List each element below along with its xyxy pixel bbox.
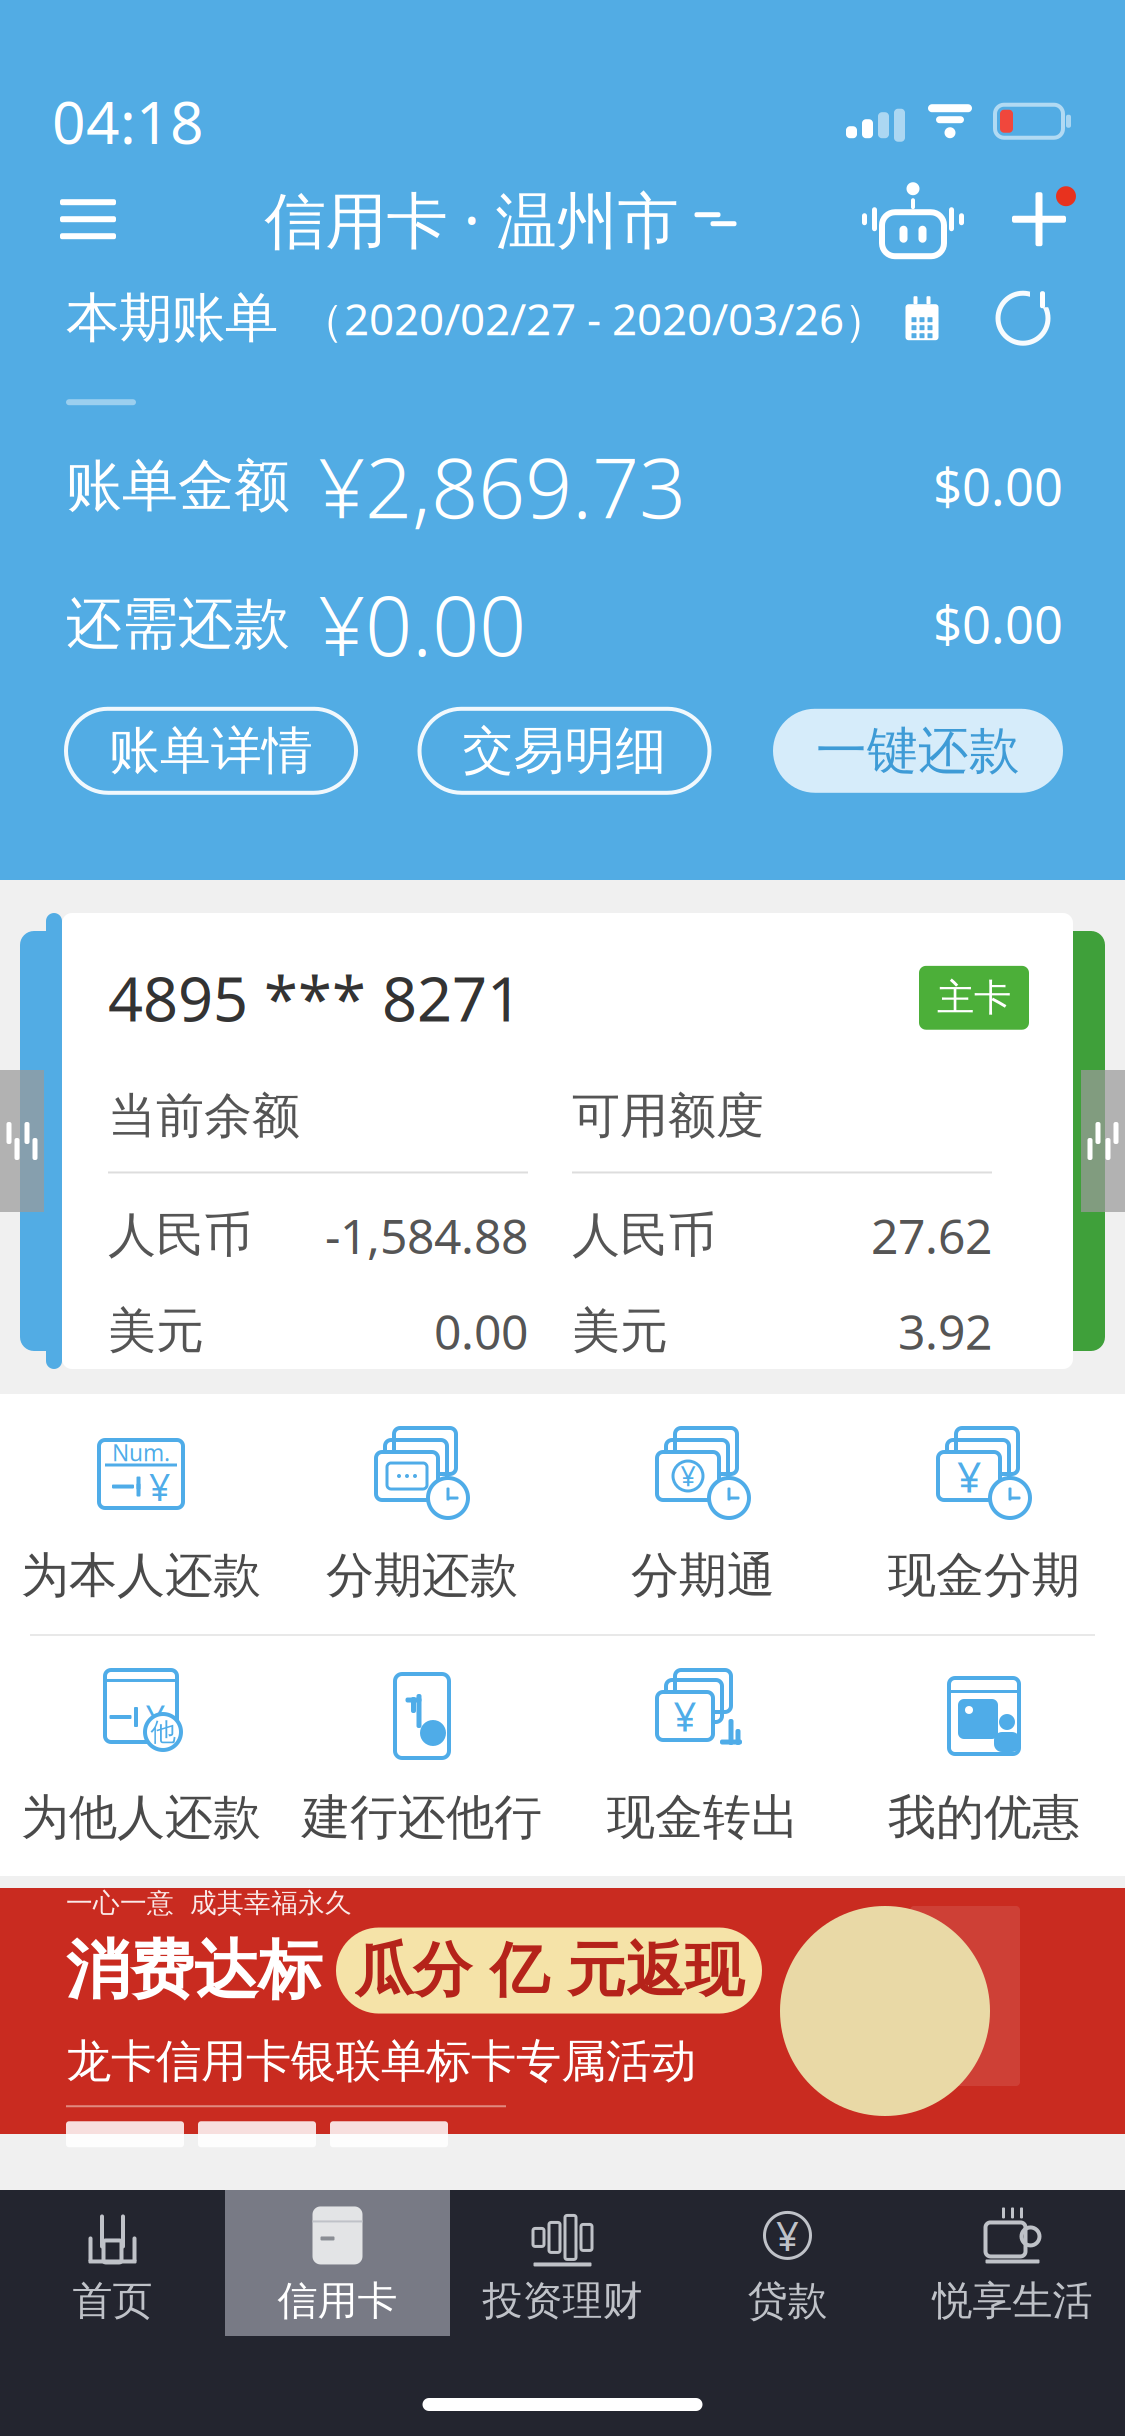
staticText: 当前余额: [108, 1086, 300, 1145]
staticText: 为本人还款: [21, 1546, 261, 1605]
staticText: ¥: [680, 1458, 695, 1494]
staticText: 分期还款: [326, 1546, 518, 1605]
button[interactable]: 消费达标瓜分亿元返现活动: [0, 1888, 1125, 2134]
staticText: ¥: [149, 1462, 170, 1511]
staticText: 消费达标: [66, 1931, 322, 2010]
staticText: 瓜分 亿 元返现: [354, 1934, 744, 2007]
staticText: ¥: [776, 2209, 799, 2262]
button[interactable]: 交易明细: [419, 709, 709, 793]
button[interactable]: 菜单: [34, 171, 142, 267]
staticText: 本期账单: [66, 285, 278, 351]
button[interactable]: 信用卡: [225, 2190, 450, 2336]
staticText: 为他人还款: [21, 1788, 261, 1847]
staticText: ¥: [145, 1694, 165, 1740]
staticText: ¥: [673, 1689, 696, 1742]
staticText: Num.: [112, 1437, 170, 1467]
staticText: $0.00: [933, 590, 1063, 657]
button[interactable]: 智能客服: [861, 171, 965, 267]
staticText: 首页: [72, 2276, 152, 2325]
button[interactable]: 刷新: [983, 281, 1063, 355]
staticText: 主卡: [937, 975, 1011, 1021]
staticText: 账单详情: [109, 720, 313, 782]
staticText: 一键还款: [816, 720, 1020, 782]
button[interactable]: ¥: [675, 2190, 900, 2336]
staticText: 3.92: [898, 1299, 992, 1363]
staticText: 0.00: [434, 1299, 528, 1363]
button[interactable]: 添加: [991, 171, 1087, 267]
button[interactable]: Num.: [0, 1394, 281, 1634]
staticText: 贷款: [747, 2276, 827, 2325]
button[interactable]: 上一张卡: [0, 1070, 44, 1212]
staticText: 一心一意 成其幸福永久: [66, 1887, 352, 1920]
staticText: 可用额度: [572, 1086, 764, 1145]
button[interactable]: ¥: [562, 1636, 843, 1876]
button[interactable]: 投资理财: [450, 2190, 675, 2336]
staticText: 现金转出: [607, 1788, 799, 1847]
staticText: 还需还款: [66, 589, 290, 658]
staticText: 投资理财: [482, 2276, 642, 2325]
button[interactable]: ¥: [843, 1394, 1124, 1634]
staticText: 他: [150, 1716, 175, 1747]
staticText: 27.62: [871, 1203, 992, 1267]
staticText: 美元: [572, 1302, 668, 1361]
button[interactable]: 我的优惠: [843, 1636, 1124, 1876]
button[interactable]: 信用卡 · 温州市: [264, 171, 738, 267]
button[interactable]: ¥: [0, 1636, 281, 1876]
button[interactable]: 建行还他行: [281, 1636, 562, 1876]
staticText: 信用卡: [277, 2276, 397, 2325]
button[interactable]: 一键还款: [773, 709, 1063, 793]
button[interactable]: （2020/02/27 - 2020/03/26）: [300, 289, 940, 348]
staticText: ¥: [957, 1448, 981, 1504]
button[interactable]: 分期还款: [281, 1394, 562, 1634]
staticText: 分期通: [631, 1546, 775, 1605]
staticText: 建行还他行: [302, 1788, 542, 1847]
staticText: 悦享生活: [932, 2276, 1092, 2325]
button[interactable]: ¥: [562, 1394, 843, 1634]
staticText: 人民币: [572, 1206, 716, 1265]
button[interactable]: 悦享生活: [900, 2190, 1125, 2336]
staticText: 账单金额: [66, 452, 290, 520]
staticText: 04:18: [52, 82, 204, 160]
staticText: 美元: [108, 1302, 204, 1361]
staticText: $0.00: [933, 452, 1063, 520]
staticText: 龙卡信用卡银联单标卡专属活动: [66, 2034, 696, 2089]
staticText: 人民币: [108, 1206, 252, 1265]
staticText: ¥2,869.73: [318, 431, 686, 541]
staticText: 4895 *** 8271: [108, 957, 522, 1038]
staticText: 信用卡 · 温州市: [264, 178, 678, 260]
button[interactable]: 首页: [0, 2190, 225, 2336]
button[interactable]: 账单详情: [66, 709, 356, 793]
staticText: ¥0.00: [318, 569, 526, 679]
staticText: -1,584.88: [325, 1203, 528, 1267]
staticText: 交易明细: [462, 720, 666, 782]
button[interactable]: 下一张卡: [1081, 1070, 1125, 1212]
staticText: 现金分期: [888, 1546, 1080, 1605]
staticText: 我的优惠: [888, 1788, 1080, 1847]
staticText: （2020/02/27 - 2020/03/26）: [300, 289, 888, 348]
